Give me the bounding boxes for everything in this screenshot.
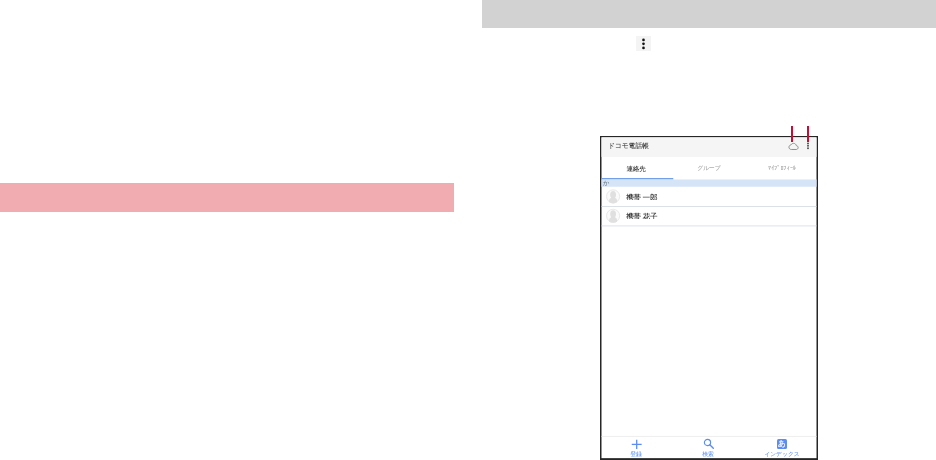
button[interactable]: グループ [673, 157, 745, 179]
staticText: か [603, 179, 623, 186]
staticText: 携帯 一郎 [626, 192, 706, 200]
button[interactable]: 登録 [601, 437, 673, 458]
button[interactable]: More options [803, 139, 813, 151]
button[interactable]: 携帯 一郎 [601, 186, 817, 206]
staticText: 検索 [672, 450, 744, 457]
button[interactable]: 検索 [673, 437, 745, 458]
staticText: ドコモ電話帳 [608, 142, 678, 150]
staticText: 携帯 花子 [626, 211, 706, 219]
staticText: 連絡先 [600, 165, 672, 173]
staticText: 登録 [600, 450, 672, 457]
button[interactable]: 連絡先 [601, 157, 673, 179]
staticText: ﾏｲﾌﾟﾛﾌｨｰﾙ [746, 165, 818, 173]
staticText: インデックス [746, 450, 818, 457]
staticText: あ [778, 439, 786, 449]
button[interactable]: 携帯 花子 [601, 207, 817, 226]
button[interactable]: あ [745, 437, 817, 458]
button[interactable]: More options [636, 36, 651, 51]
button[interactable]: ﾏｲﾌﾟﾛﾌｨｰﾙ [745, 157, 817, 179]
staticText: グループ [673, 164, 745, 172]
button[interactable]: Cloud backup [787, 139, 801, 151]
